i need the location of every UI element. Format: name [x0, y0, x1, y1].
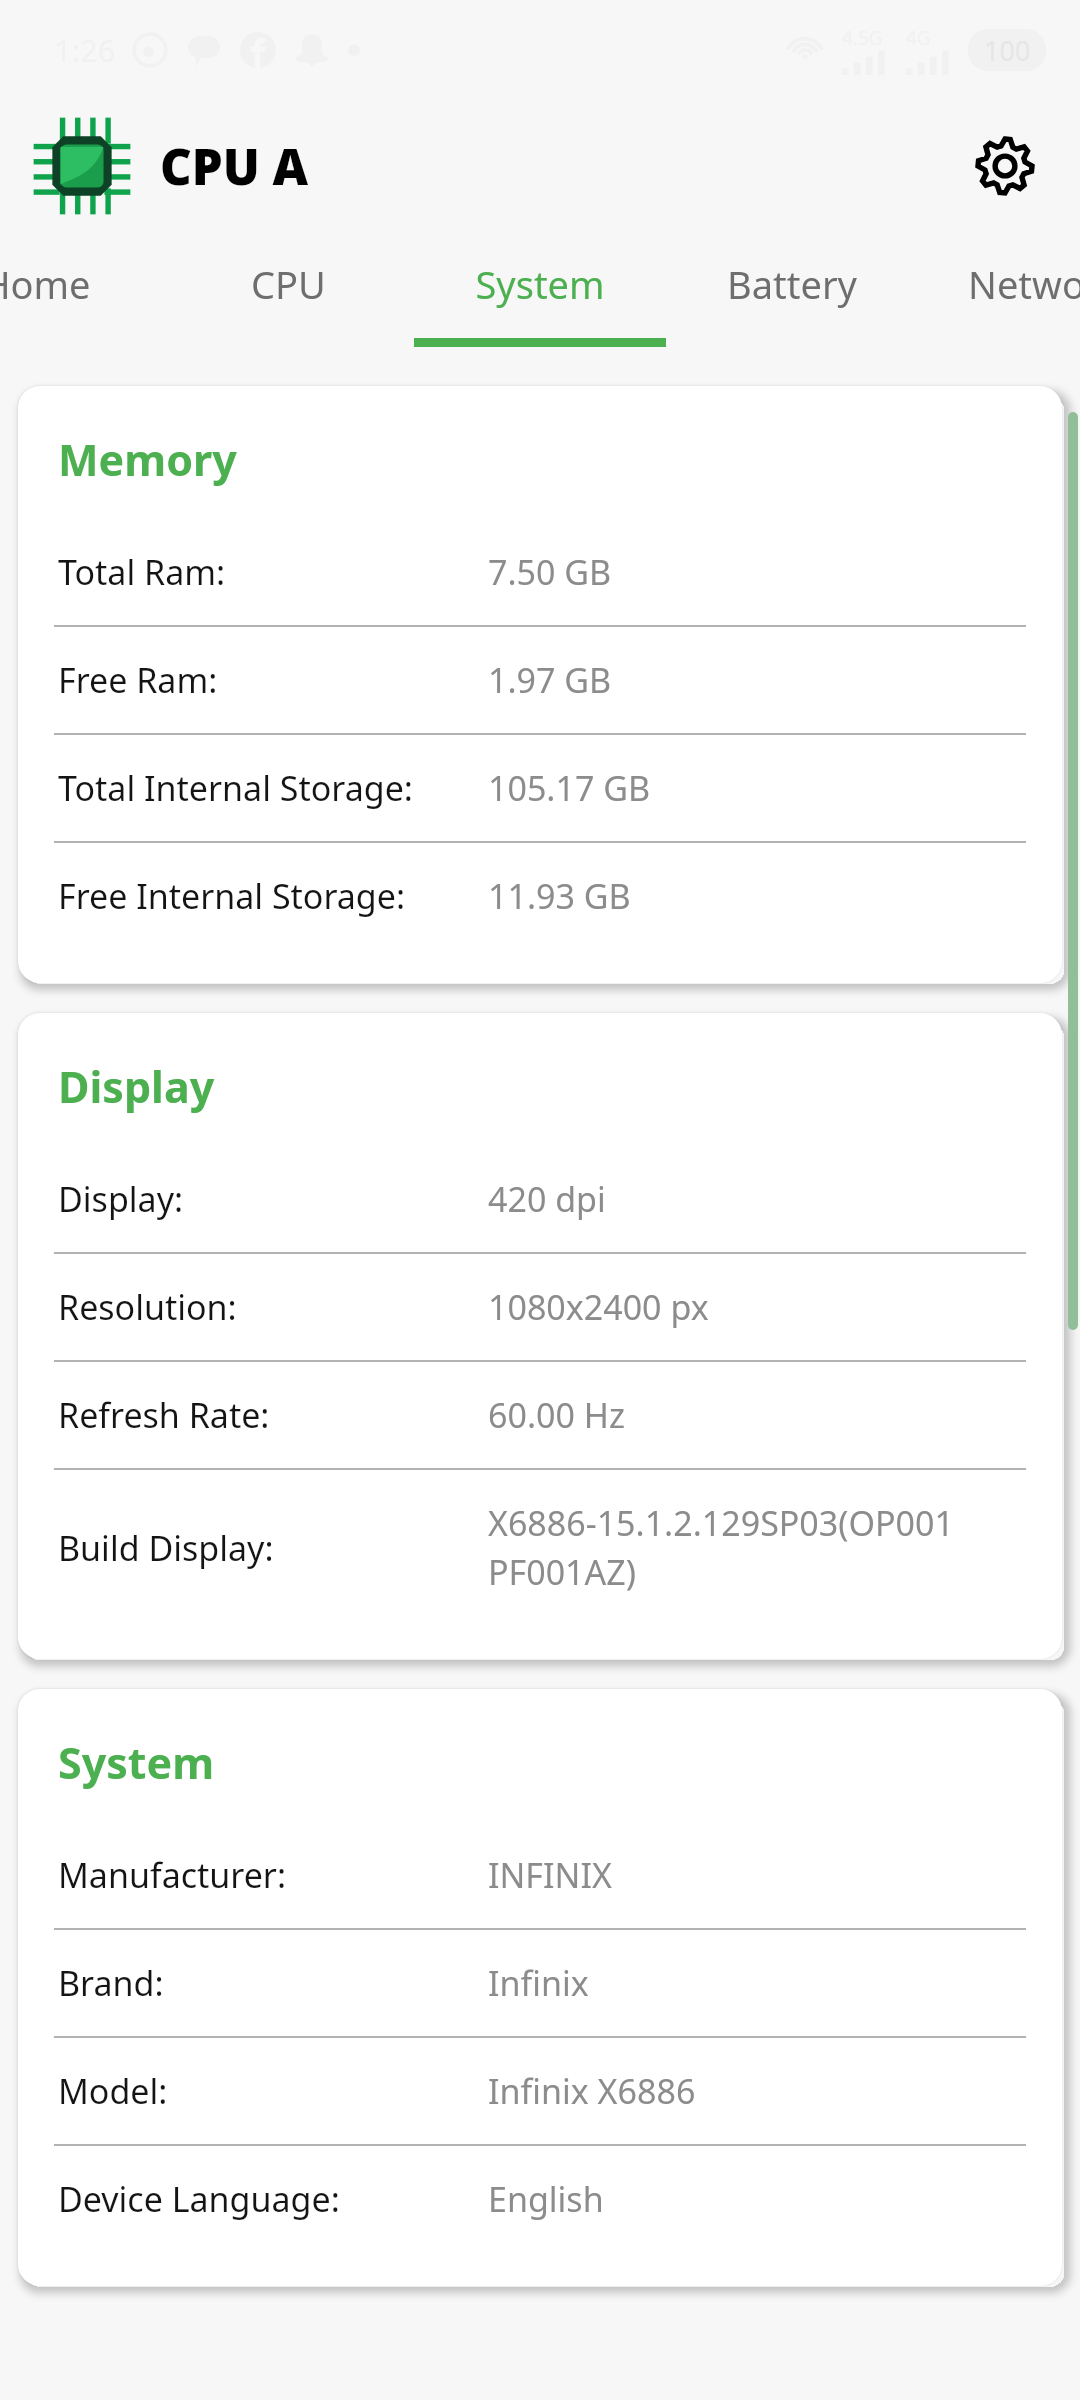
- staticText: Brand:: [58, 1960, 488, 2006]
- staticText: Refresh Rate:: [58, 1392, 488, 1438]
- staticText: Home: [0, 258, 91, 310]
- staticText: CPU A: [160, 133, 309, 200]
- staticText: X6886-15.1.2.129SP03(OP001 PF001AZ): [488, 1500, 954, 1595]
- staticText: Resolution:: [58, 1284, 488, 1330]
- button[interactable]: Total Internal Storage:: [18, 735, 1062, 841]
- button[interactable]: Build Display:: [18, 1470, 1062, 1625]
- button[interactable]: Home: [0, 232, 162, 360]
- staticText: Infinix: [488, 1960, 589, 2006]
- button[interactable]: Model:: [18, 2038, 1062, 2144]
- staticText: 11.93 GB: [488, 873, 631, 919]
- button[interactable]: Settings: [956, 117, 1054, 215]
- button[interactable]: Free Ram:: [18, 627, 1062, 733]
- button[interactable]: CPU: [162, 232, 414, 360]
- staticText: Total Ram:: [58, 549, 488, 595]
- staticText: Memory: [58, 430, 237, 489]
- staticText: Manufacturer:: [58, 1852, 488, 1898]
- staticText: Model:: [58, 2068, 488, 2114]
- staticText: 7.50 GB: [488, 549, 612, 595]
- button[interactable]: System: [414, 232, 666, 360]
- button[interactable]: Device Language:: [18, 2146, 1062, 2252]
- staticText: English: [488, 2176, 604, 2222]
- staticText: System: [475, 258, 605, 310]
- staticText: Infinix X6886: [488, 2068, 696, 2114]
- staticText: 420 dpi: [488, 1176, 606, 1222]
- staticText: 1.97 GB: [488, 657, 612, 703]
- staticText: Battery: [727, 258, 857, 310]
- staticText: Build Display:: [58, 1525, 488, 1571]
- button[interactable]: Refresh Rate:: [18, 1362, 1062, 1468]
- button[interactable]: Manufacturer:: [18, 1822, 1062, 1928]
- staticText: 60.00 Hz: [488, 1392, 625, 1438]
- staticText: Device Language:: [58, 2176, 488, 2222]
- button[interactable]: Resolution:: [18, 1254, 1062, 1360]
- staticText: CPU: [251, 258, 326, 310]
- button[interactable]: Brand:: [18, 1930, 1062, 2036]
- button[interactable]: Battery: [666, 232, 918, 360]
- button[interactable]: Display:: [18, 1146, 1062, 1252]
- staticText: Network: [968, 258, 1080, 310]
- staticText: 1080x2400 px: [488, 1284, 709, 1330]
- staticText: Free Ram:: [58, 657, 488, 703]
- staticText: 100: [984, 32, 1031, 69]
- button[interactable]: Network: [918, 232, 1080, 360]
- button[interactable]: Free Internal Storage:: [18, 843, 1062, 949]
- staticText: Total Internal Storage:: [58, 765, 488, 811]
- staticText: System: [58, 1733, 215, 1792]
- staticText: 105.17 GB: [488, 765, 651, 811]
- button[interactable]: Total Ram:: [18, 519, 1062, 625]
- staticText: INFINIX: [488, 1852, 612, 1898]
- staticText: Display: [58, 1057, 215, 1116]
- staticText: Free Internal Storage:: [58, 873, 488, 919]
- staticText: Display:: [58, 1176, 488, 1222]
